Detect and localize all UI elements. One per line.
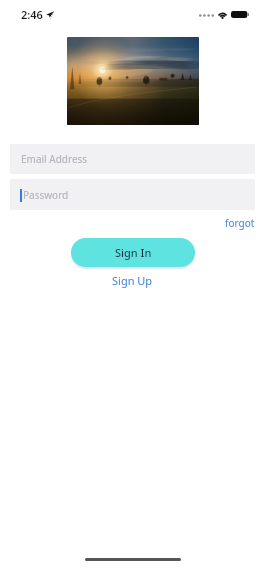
button[interactable]: Password [10, 179, 255, 210]
staticText: Sign Up [112, 273, 153, 288]
staticText: Password [23, 188, 69, 202]
button[interactable]: forgot [217, 213, 265, 233]
button[interactable]: Sign Up [102, 269, 163, 292]
staticText: Email Address [21, 152, 88, 166]
staticText: 2:46 [21, 7, 43, 22]
staticText: Sign In [115, 245, 152, 260]
button[interactable]: Email Address [10, 144, 255, 174]
button[interactable]: Sign In [71, 238, 195, 267]
staticText: forgot [225, 216, 255, 230]
